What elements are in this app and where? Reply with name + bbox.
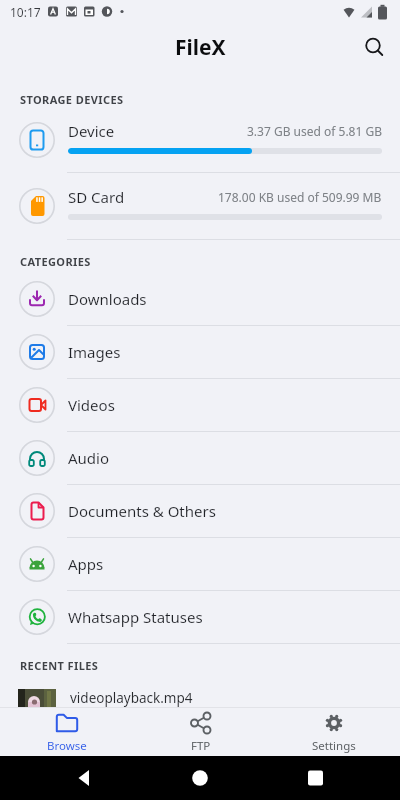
staticText: RECENT FILES: [20, 658, 99, 673]
staticText: Settings: [312, 738, 356, 754]
staticText: Documents & Others: [68, 501, 216, 521]
staticText: SD Card: [68, 187, 125, 207]
button[interactable]: Whatsapp Statuses: [0, 591, 400, 643]
button[interactable]: Downloads: [0, 273, 400, 325]
button[interactable]: FTP: [134, 708, 267, 756]
button[interactable]: Browse: [0, 708, 134, 756]
staticText: 10:17: [10, 4, 41, 20]
staticText: Whatsapp Statuses: [68, 607, 203, 627]
button[interactable]: Device: [0, 107, 400, 172]
staticText: Audio: [68, 448, 110, 468]
button[interactable]: Settings: [267, 708, 400, 756]
button[interactable]: [360, 33, 388, 61]
staticText: Images: [68, 342, 121, 362]
button[interactable]: Images: [0, 326, 400, 378]
staticText: CATEGORIES: [20, 254, 91, 269]
staticText: STORAGE DEVICES: [20, 92, 124, 107]
button[interactable]: Audio: [0, 432, 400, 484]
staticText: 178.00 KB used of 509.99 MB: [218, 189, 382, 205]
staticText: FTP: [191, 738, 211, 754]
button[interactable]: videoplayback.mp4: [0, 677, 400, 707]
staticText: Device: [68, 121, 115, 141]
staticText: Downloads: [68, 289, 147, 309]
button[interactable]: SD Card: [0, 173, 400, 239]
button[interactable]: Documents & Others: [0, 485, 400, 537]
staticText: 3.37 GB used of 5.81 GB: [247, 123, 382, 139]
staticText: FileX: [175, 33, 226, 62]
button[interactable]: Videos: [0, 379, 400, 431]
staticText: Videos: [68, 395, 115, 415]
button[interactable]: Apps: [0, 538, 400, 590]
staticText: videoplayback.mp4: [70, 689, 193, 707]
staticText: Apps: [68, 554, 104, 574]
staticText: Browse: [47, 738, 87, 754]
